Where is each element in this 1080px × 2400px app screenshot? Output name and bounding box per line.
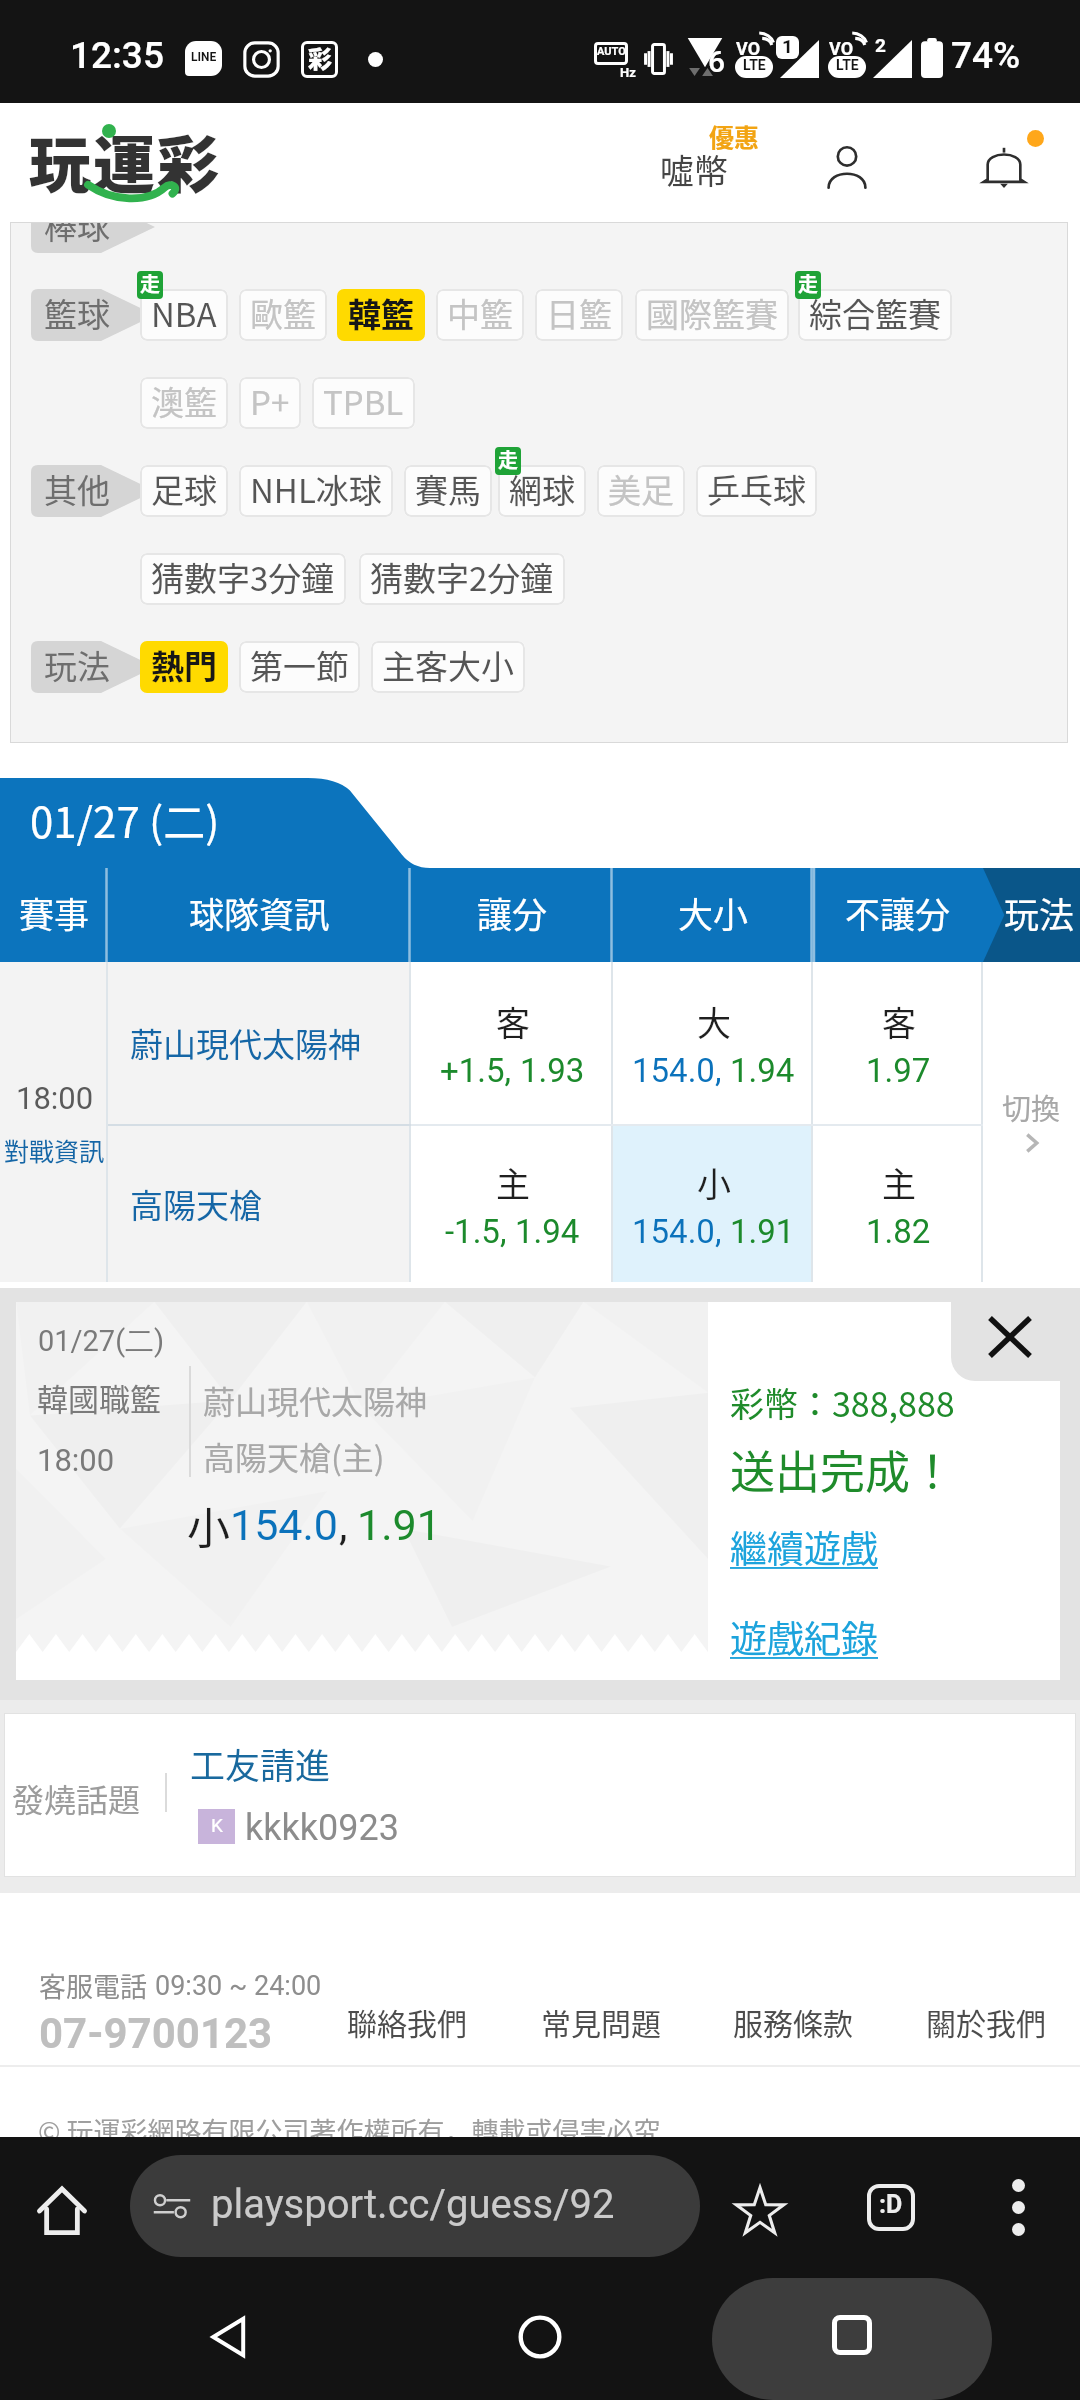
button[interactable]: 遊戲紀錄 bbox=[730, 1610, 878, 1664]
staticText: 客服電話 bbox=[39, 1966, 147, 2005]
staticText: 1 bbox=[782, 36, 793, 57]
button[interactable]: TPBL bbox=[312, 377, 415, 429]
button[interactable]: 韓籃 bbox=[337, 289, 425, 341]
staticText: P+ bbox=[250, 377, 290, 425]
staticText: 1.91 bbox=[730, 1212, 795, 1251]
staticText: 1.94 bbox=[515, 1212, 580, 1251]
staticText: 小 bbox=[187, 1494, 230, 1556]
button[interactable]: 第一節 bbox=[239, 641, 360, 693]
button[interactable]: More options bbox=[982, 2171, 1054, 2243]
staticText: 07-9700123 bbox=[39, 2009, 273, 2058]
staticText: 國際籃賽 bbox=[646, 289, 778, 337]
staticText: 澳籃 bbox=[151, 377, 217, 425]
button[interactable]: 主 bbox=[866, 1158, 931, 1251]
staticText: 74% bbox=[951, 34, 1021, 77]
button[interactable]: 對戰資訊 bbox=[4, 1132, 105, 1168]
button[interactable]: 小 bbox=[632, 1158, 795, 1251]
staticText: +1.5, bbox=[440, 1051, 512, 1090]
staticText: 美足 bbox=[608, 465, 674, 513]
button[interactable]: 猜數字3分鐘 bbox=[140, 553, 346, 605]
staticText: VO bbox=[829, 38, 854, 59]
staticText: 歐籃 bbox=[250, 289, 316, 337]
staticText: 猜數字3分鐘 bbox=[151, 553, 335, 601]
staticText: 12:35 bbox=[70, 34, 164, 77]
button[interactable]: 常見問題 bbox=[541, 2000, 661, 2043]
button[interactable]: 關於我們 bbox=[926, 2000, 1046, 2043]
button[interactable]: 澳籃 bbox=[140, 377, 228, 429]
staticText: 籃球 bbox=[44, 289, 110, 337]
staticText: 高陽天槍(主) bbox=[203, 1433, 385, 1479]
staticText: 154.0 bbox=[230, 1500, 339, 1550]
staticText: 走 bbox=[498, 447, 518, 473]
staticText: 18:00 bbox=[37, 1442, 115, 1478]
button[interactable]: 大 bbox=[632, 997, 795, 1090]
button[interactable]: 綜合籃賽 bbox=[798, 289, 952, 341]
button[interactable]: 主 bbox=[445, 1158, 580, 1251]
staticText: , bbox=[339, 1500, 348, 1550]
button[interactable]: 高陽天槍 bbox=[130, 1180, 262, 1228]
button[interactable]: Account bbox=[805, 125, 889, 209]
button[interactable]: 國際籃賽 bbox=[635, 289, 789, 341]
staticText: 18:00 bbox=[16, 1080, 94, 1116]
staticText: 蔚山現代太陽神 bbox=[203, 1377, 428, 1423]
button[interactable]: 聯絡我們 bbox=[347, 2000, 467, 2043]
staticText: 足球 bbox=[151, 465, 217, 513]
staticText: NBA bbox=[151, 289, 217, 337]
staticText: 彩 bbox=[308, 40, 332, 75]
staticText: 賽事 bbox=[19, 887, 90, 938]
staticText: 優惠 bbox=[709, 118, 760, 154]
button[interactable]: 繼續遊戲 bbox=[730, 1520, 878, 1574]
button[interactable]: 日籃 bbox=[535, 289, 623, 341]
button[interactable]: 足球 bbox=[140, 465, 228, 517]
staticText: 2 bbox=[875, 34, 886, 56]
button[interactable]: Recent apps bbox=[712, 2278, 992, 2400]
button[interactable]: 賽馬 bbox=[404, 465, 492, 517]
button[interactable]: Bookmark bbox=[722, 2173, 798, 2249]
button[interactable]: Home bbox=[22, 2171, 102, 2251]
button[interactable]: Home bbox=[492, 2274, 588, 2400]
button[interactable]: 噓幣 bbox=[640, 111, 790, 213]
button[interactable]: Notifications bbox=[962, 125, 1046, 209]
button[interactable]: 美足 bbox=[597, 465, 685, 517]
button[interactable]: 網球 bbox=[498, 465, 586, 517]
button[interactable]: 服務條款 bbox=[733, 2000, 853, 2043]
staticText: 韓籃 bbox=[348, 289, 414, 337]
button[interactable]: 乒乓球 bbox=[696, 465, 817, 517]
staticText: K bbox=[211, 1814, 223, 1836]
button[interactable]: 猜數字2分鐘 bbox=[359, 553, 565, 605]
button[interactable]: Back bbox=[182, 2274, 278, 2400]
button[interactable]: 主客大小 bbox=[371, 641, 525, 693]
staticText: 1.91 bbox=[357, 1500, 441, 1550]
button[interactable]: P+ bbox=[239, 377, 301, 429]
staticText: :D bbox=[879, 2190, 903, 2219]
staticText: 第一節 bbox=[250, 641, 349, 689]
button[interactable]: Close bbox=[951, 1288, 1060, 1381]
staticText: LINE bbox=[191, 50, 217, 64]
staticText: 走 bbox=[140, 271, 160, 297]
button[interactable]: 蔚山現代太陽神 bbox=[130, 1019, 361, 1067]
staticText: 網球 bbox=[509, 465, 575, 513]
staticText: 玩法 bbox=[1004, 887, 1075, 938]
button[interactable]: playsport.cc/guess/92 bbox=[130, 2155, 700, 2257]
button[interactable]: 熱門 bbox=[140, 641, 228, 693]
staticText: 小 bbox=[697, 1158, 731, 1207]
staticText: 走 bbox=[798, 271, 818, 297]
button[interactable]: 切換 bbox=[1002, 1086, 1061, 1158]
staticText: 乒乓球 bbox=[707, 465, 806, 513]
staticText: NHL冰球 bbox=[250, 465, 382, 513]
button[interactable]: NBA bbox=[140, 289, 228, 341]
staticText: 主 bbox=[496, 1158, 530, 1207]
staticText: 01/27(二) bbox=[38, 1323, 165, 1360]
button[interactable]: 客 bbox=[866, 997, 931, 1090]
staticText: 154.0, bbox=[632, 1051, 722, 1090]
staticText: 日籃 bbox=[546, 289, 612, 337]
button[interactable]: 歐籃 bbox=[239, 289, 327, 341]
staticText: 球隊資訊 bbox=[189, 887, 330, 938]
button[interactable]: Tabs bbox=[855, 2171, 927, 2243]
staticText: 不讓分 bbox=[845, 887, 951, 938]
button[interactable]: 工友請進 bbox=[190, 1738, 331, 1789]
staticText: TPBL bbox=[323, 377, 404, 425]
button[interactable]: NHL冰球 bbox=[239, 465, 393, 517]
button[interactable]: 客 bbox=[440, 997, 585, 1090]
button[interactable]: 中籃 bbox=[436, 289, 524, 341]
